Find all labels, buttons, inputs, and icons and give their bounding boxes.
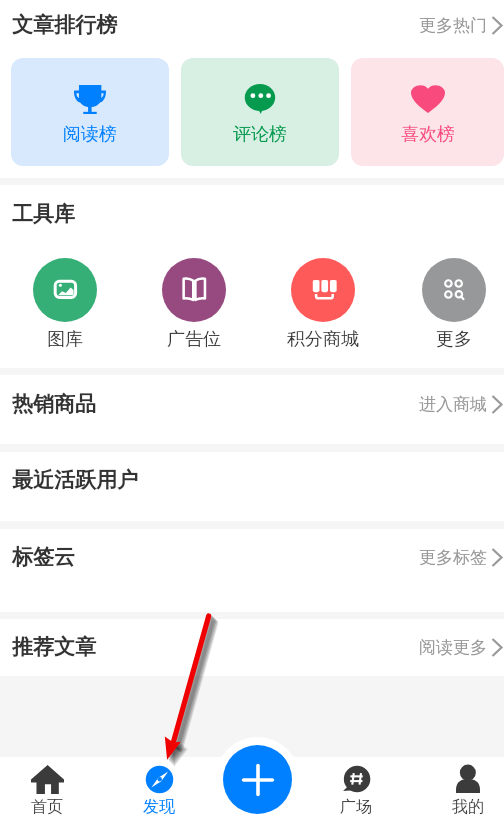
staticText: 更多标签 (419, 547, 487, 568)
staticText: 更多 (436, 328, 472, 351)
staticText: 进入商城 (419, 394, 487, 415)
button[interactable]: 广场 (310, 757, 402, 819)
staticText: 喜欢榜 (401, 123, 455, 146)
staticText: 阅读更多 (419, 637, 487, 658)
button[interactable]: 图库 (19, 258, 111, 351)
button[interactable]: 我的 (422, 757, 504, 819)
staticText: 我的 (452, 797, 484, 817)
staticText: 积分商城 (287, 328, 359, 351)
button[interactable]: 广告位 (148, 258, 240, 351)
staticText: 阅读榜 (63, 123, 117, 146)
button[interactable]: 评论榜 (181, 58, 339, 166)
button[interactable]: 积分商城 (277, 258, 369, 351)
staticText: 更多热门 (419, 15, 487, 36)
button[interactable]: 阅读更多 (419, 637, 502, 658)
staticText: 推荐文章 (12, 634, 96, 660)
staticText: 发现 (143, 797, 175, 817)
button[interactable]: 首页 (1, 757, 93, 819)
staticText: 图库 (47, 328, 83, 351)
staticText: 广告位 (167, 328, 221, 351)
button[interactable]: 更多标签 (419, 547, 502, 568)
staticText: 热销商品 (12, 391, 96, 417)
staticText: 标签云 (12, 544, 75, 570)
button[interactable]: 更多热门 (419, 15, 502, 36)
button[interactable]: Add (223, 745, 292, 814)
button[interactable]: 更多 (408, 258, 500, 351)
staticText: 评论榜 (233, 123, 287, 146)
staticText: 文章排行榜 (12, 12, 117, 38)
staticText: 首页 (31, 797, 63, 817)
button[interactable]: 阅读榜 (11, 58, 169, 166)
button[interactable]: 进入商城 (419, 394, 502, 415)
staticText: 工具库 (12, 201, 75, 227)
staticText: 广场 (340, 797, 372, 817)
button[interactable]: 发现 (113, 757, 205, 819)
button[interactable]: 喜欢榜 (351, 58, 504, 166)
staticText: 最近活跃用户 (12, 467, 138, 493)
